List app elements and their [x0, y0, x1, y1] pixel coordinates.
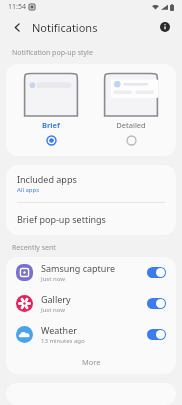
button[interactable]: Weather: [6, 319, 176, 350]
staticText: Detailed: [116, 120, 146, 130]
button[interactable]: Back: [8, 18, 26, 36]
staticText: Brief: [42, 120, 60, 130]
button[interactable]: More information: [156, 18, 174, 36]
staticText: More: [82, 357, 101, 367]
button[interactable]: Gallery: [6, 288, 176, 319]
button[interactable]: Detailed: [97, 70, 165, 150]
staticText: Included apps: [17, 173, 77, 185]
staticText: Samsung capture: [41, 262, 116, 274]
staticText: Gallery: [41, 293, 71, 305]
button[interactable]: Toggle notifications: [147, 267, 166, 278]
button[interactable]: More: [6, 350, 176, 374]
staticText: Notifications: [32, 20, 98, 35]
staticText: 13 minutes ago: [41, 337, 85, 345]
staticText: Weather: [41, 324, 77, 336]
staticText: Recently sent: [12, 243, 56, 253]
staticText: Just now: [41, 275, 65, 283]
button[interactable]: Toggle notifications: [147, 329, 166, 340]
button[interactable]: Toggle notifications: [147, 298, 166, 309]
button[interactable]: Brief: [17, 70, 85, 150]
button[interactable]: Brief pop-up settings: [6, 203, 176, 235]
button[interactable]: Samsung capture: [6, 257, 176, 288]
staticText: Notification pop-up style: [12, 48, 93, 58]
button[interactable]: Included apps: [6, 165, 176, 202]
staticText: Just now: [41, 306, 65, 314]
staticText: 11:54: [8, 2, 26, 12]
staticText: All apps: [17, 186, 40, 194]
staticText: Brief pop-up settings: [17, 213, 106, 225]
